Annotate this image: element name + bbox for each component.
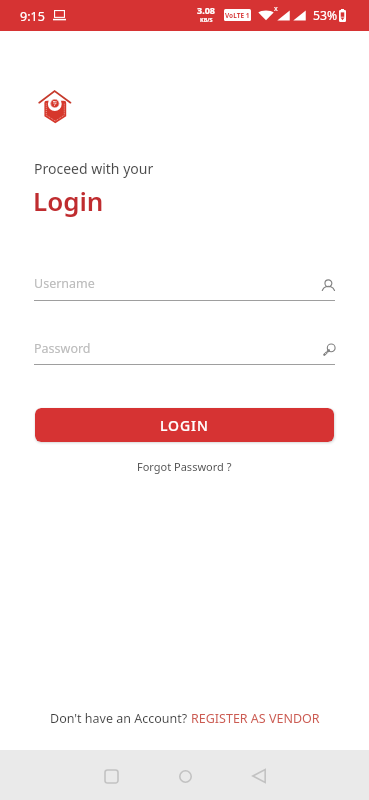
staticText: Username <box>34 275 95 292</box>
staticText: Forgot Password ? <box>137 459 232 474</box>
staticText: 9:15 <box>20 8 45 25</box>
staticText: VoLTE 1 <box>225 11 250 20</box>
staticText: x <box>274 4 278 14</box>
staticText: Login <box>33 183 104 218</box>
button[interactable]: Password <box>34 332 335 365</box>
button[interactable]: Back <box>237 754 281 798</box>
other: Password <box>320 340 338 358</box>
button[interactable]: LOGIN <box>35 408 334 442</box>
staticText: 3.08 <box>197 4 215 16</box>
button[interactable]: Forgot Password ? <box>131 457 238 476</box>
staticText: 53% <box>313 7 338 24</box>
staticText: LOGIN <box>160 416 209 435</box>
staticText: Proceed with your <box>34 159 154 178</box>
button[interactable]: REGISTER AS VENDOR <box>191 710 320 727</box>
staticText: Password <box>34 340 91 357</box>
button[interactable]: Username <box>34 267 335 301</box>
button[interactable]: Home <box>163 754 207 798</box>
staticText: KB/S <box>200 16 213 23</box>
staticText: REGISTER AS VENDOR <box>191 710 320 727</box>
staticText: Don't have an Account? <box>50 710 191 727</box>
button[interactable]: Recent apps <box>89 754 133 798</box>
other: Username <box>320 276 338 294</box>
